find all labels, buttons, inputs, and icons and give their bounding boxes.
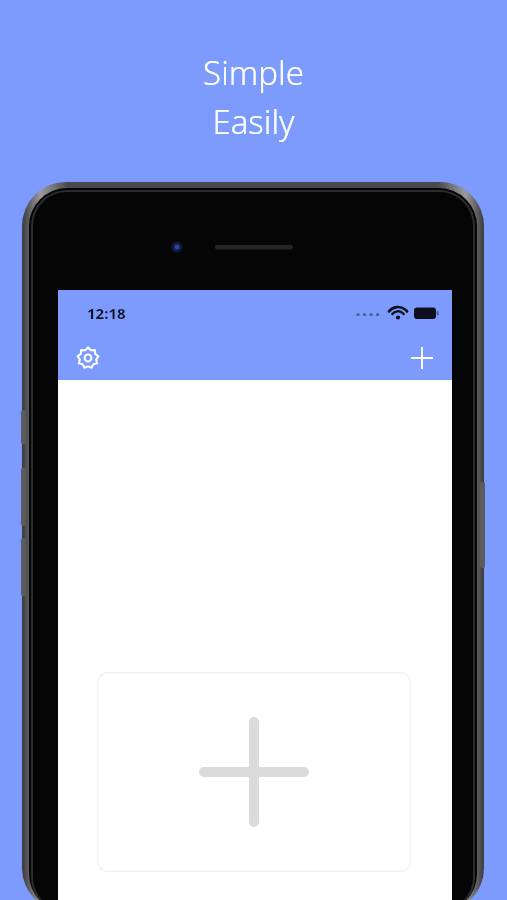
- staticText: Easily: [212, 99, 295, 144]
- staticText: 12:18: [87, 303, 126, 323]
- button[interactable]: Settings: [70, 340, 106, 376]
- button[interactable]: Add item: [97, 672, 411, 872]
- staticText: Simple: [203, 50, 304, 95]
- button[interactable]: Add: [404, 340, 440, 376]
